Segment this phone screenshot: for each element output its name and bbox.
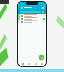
button[interactable] bbox=[18, 14, 46, 17]
button[interactable]: Menu bbox=[20, 6, 23, 9]
button[interactable] bbox=[18, 17, 46, 20]
button[interactable]: Add bbox=[39, 55, 44, 60]
button[interactable]: Filter bbox=[42, 11, 44, 13]
button[interactable] bbox=[20, 11, 41, 13]
button[interactable]: Tab bbox=[26, 62, 31, 66]
button[interactable]: Tab bbox=[20, 62, 25, 66]
button[interactable] bbox=[18, 20, 46, 23]
button[interactable]: Tab bbox=[39, 62, 44, 66]
button[interactable]: Tab bbox=[33, 62, 38, 66]
